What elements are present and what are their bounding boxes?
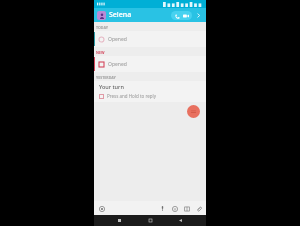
button[interactable]: Back (176, 216, 185, 225)
button[interactable]: Voice message (158, 204, 167, 213)
staticText: NEW (96, 50, 105, 55)
button[interactable]: New message (187, 105, 200, 118)
button[interactable]: Opened (94, 56, 206, 72)
button[interactable]: Recents (115, 216, 124, 225)
button[interactable]: Opened (94, 31, 206, 47)
staticText: TODAY (96, 25, 108, 30)
staticText: Opened (108, 61, 127, 68)
button[interactable]: Contact avatar (97, 11, 106, 20)
staticText: YESTERDAY (96, 75, 116, 80)
button[interactable]: Stickers (182, 204, 191, 213)
button[interactable]: Your turn (94, 81, 206, 102)
button[interactable]: More (194, 11, 203, 20)
button[interactable]: Home (146, 216, 155, 225)
button[interactable]: Attach (194, 204, 203, 213)
button[interactable]: Camera (97, 204, 106, 213)
staticText: Press and Hold to reply (107, 93, 156, 99)
button[interactable]: Video call (182, 12, 190, 20)
button[interactable]: Call (173, 12, 181, 20)
staticText: Your turn (99, 83, 124, 90)
button[interactable]: Selena (109, 10, 132, 20)
button[interactable]: Emoji (170, 204, 179, 213)
staticText: Opened (108, 36, 127, 43)
